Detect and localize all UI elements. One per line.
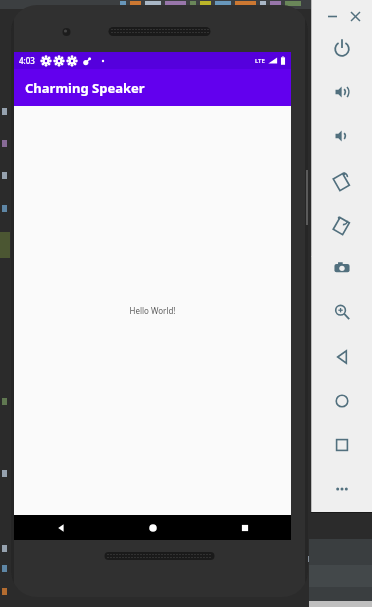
button[interactable]: Volume up [329, 79, 355, 105]
button[interactable]: Back [329, 344, 355, 370]
staticText: Hello World! [129, 305, 176, 316]
button[interactable]: Zoom [329, 299, 355, 325]
button[interactable]: Back [14, 515, 107, 540]
button[interactable]: Rotate right [329, 212, 355, 238]
button[interactable]: Close [347, 8, 364, 25]
button[interactable]: Charming Speaker [14, 69, 291, 106]
button[interactable]: Home [107, 515, 199, 540]
button[interactable]: Recent apps [199, 515, 291, 540]
button[interactable]: More [329, 476, 355, 502]
staticText: 4:03 [19, 55, 35, 66]
staticText: LTE [255, 57, 265, 65]
button[interactable]: Overview [329, 432, 355, 458]
button[interactable]: Volume down [329, 123, 355, 149]
button[interactable]: Rotate left [329, 168, 355, 194]
button[interactable]: Take screenshot [329, 255, 355, 281]
staticText: Charming Speaker [25, 79, 145, 97]
button[interactable]: Power [329, 35, 355, 61]
button[interactable]: Minimize [324, 8, 341, 25]
button[interactable]: Home [329, 388, 355, 414]
